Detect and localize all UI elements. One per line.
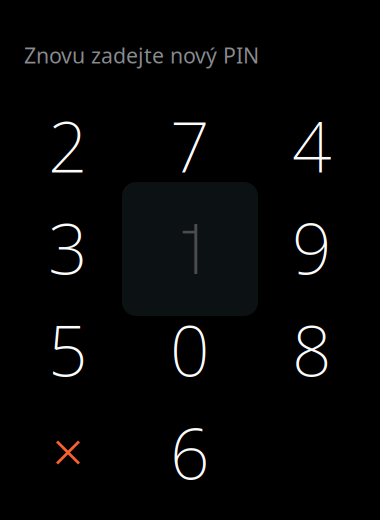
staticText: 3 bbox=[48, 201, 88, 294]
button[interactable]: 9 bbox=[251, 196, 373, 298]
button[interactable]: 3 bbox=[7, 196, 129, 298]
staticText: 4 bbox=[292, 99, 332, 192]
staticText: 7 bbox=[170, 99, 210, 192]
button[interactable]: 4 bbox=[251, 94, 373, 196]
staticText: 0 bbox=[170, 303, 210, 396]
button[interactable]: 5 bbox=[7, 298, 129, 400]
staticText: Znovu zadejte nový PIN bbox=[24, 41, 259, 69]
button[interactable]: 8 bbox=[251, 298, 373, 400]
staticText: 6 bbox=[170, 406, 210, 499]
staticText: 9 bbox=[292, 201, 332, 294]
button[interactable]: Delete bbox=[7, 401, 129, 503]
staticText: 2 bbox=[48, 99, 88, 192]
button[interactable]: 6 bbox=[129, 401, 251, 503]
button[interactable]: 7 bbox=[129, 94, 251, 196]
staticText: 8 bbox=[292, 303, 332, 396]
button[interactable]: 0 bbox=[129, 298, 251, 400]
staticText: 5 bbox=[48, 303, 88, 396]
button[interactable]: 2 bbox=[7, 94, 129, 196]
button[interactable]: 1 bbox=[129, 198, 251, 300]
